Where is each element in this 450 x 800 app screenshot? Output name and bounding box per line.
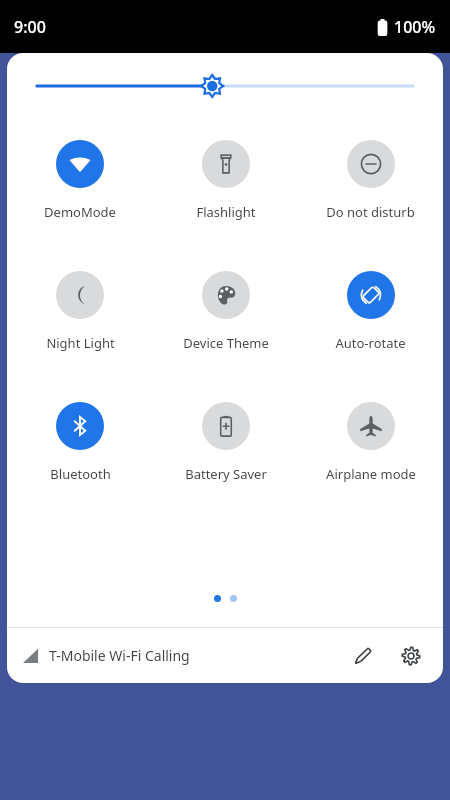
button[interactable]: Flashlight bbox=[153, 138, 298, 223]
button[interactable]: Device Theme bbox=[153, 269, 298, 354]
staticText: DemoMode bbox=[44, 203, 116, 221]
button[interactable]: Battery Saver bbox=[153, 400, 298, 485]
staticText: Auto-rotate bbox=[335, 334, 406, 352]
staticText: Bluetooth bbox=[50, 465, 111, 483]
button[interactable]: Bluetooth bbox=[7, 400, 153, 485]
staticText: Device Theme bbox=[183, 334, 269, 352]
staticText: Airplane mode bbox=[326, 465, 416, 483]
staticText: Battery Saver bbox=[185, 465, 267, 483]
staticText: T-Mobile Wi-Fi Calling bbox=[49, 646, 190, 665]
staticText: Night Light bbox=[46, 334, 115, 352]
button[interactable]: Auto-rotate bbox=[298, 269, 443, 354]
staticText: 9:00 bbox=[14, 16, 46, 38]
button[interactable]: Settings bbox=[393, 638, 429, 674]
staticText: 100% bbox=[394, 16, 436, 38]
button[interactable]: DemoMode bbox=[7, 138, 153, 223]
button[interactable]: Brightness bbox=[7, 53, 443, 119]
staticText: Do not disturb bbox=[326, 203, 415, 221]
button[interactable]: Do not disturb bbox=[298, 138, 443, 223]
button[interactable]: Night Light bbox=[7, 269, 153, 354]
staticText: Flashlight bbox=[196, 203, 256, 221]
button[interactable]: Edit tiles bbox=[345, 638, 381, 674]
button[interactable]: Airplane mode bbox=[298, 400, 443, 485]
